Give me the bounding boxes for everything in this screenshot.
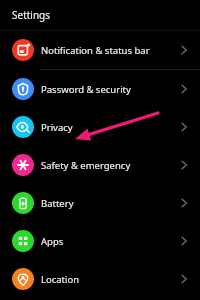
staticText: Privacy — [41, 121, 176, 134]
other: Apps — [176, 233, 192, 249]
staticText: Location — [41, 273, 176, 286]
other: Safety & emergency — [176, 157, 192, 173]
staticText: Password & security — [41, 83, 176, 96]
button[interactable]: Battery — [0, 184, 200, 222]
other: Location — [176, 271, 192, 287]
button[interactable]: Location — [0, 260, 200, 298]
button[interactable]: Safety & emergency — [0, 146, 200, 184]
other: Battery — [176, 195, 192, 211]
staticText: Battery — [41, 197, 176, 210]
staticText: Apps — [41, 235, 176, 248]
button[interactable]: Password & security — [0, 70, 200, 108]
other: Privacy — [176, 119, 192, 135]
other: Notification & status bar — [176, 42, 192, 58]
button[interactable]: Notification & status bar — [0, 31, 200, 69]
other: Password & security — [176, 81, 192, 97]
staticText: Settings — [12, 8, 51, 22]
button[interactable]: Privacy — [0, 108, 200, 146]
staticText: Safety & emergency — [41, 159, 176, 172]
button[interactable]: Apps — [0, 222, 200, 260]
staticText: Notification & status bar — [41, 44, 176, 57]
